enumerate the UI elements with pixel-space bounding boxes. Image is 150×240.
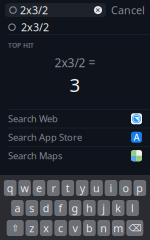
staticText: a <box>14 201 20 215</box>
staticText: o <box>122 181 128 195</box>
button[interactable]: Search App Store <box>0 128 150 146</box>
button[interactable]: t <box>61 180 74 196</box>
staticText: j <box>102 201 105 215</box>
button[interactable]: b <box>83 220 96 236</box>
button[interactable]: x <box>40 220 52 236</box>
staticText: ✕ <box>95 6 101 14</box>
staticText: Cancel <box>111 3 145 17</box>
staticText: 2x3/2 = <box>54 54 95 70</box>
staticText: g <box>71 201 78 215</box>
button[interactable]: d <box>40 200 52 216</box>
staticText: m <box>113 221 123 235</box>
button[interactable]: p <box>133 180 146 196</box>
button[interactable]: r <box>47 180 60 196</box>
staticText: A <box>133 131 139 143</box>
button[interactable]: g <box>69 200 81 216</box>
staticText: x <box>43 221 49 235</box>
staticText: TOP HIT <box>8 41 34 50</box>
staticText: Search Web <box>8 112 58 125</box>
button[interactable]: Cancel <box>111 3 145 17</box>
button[interactable]: Search Maps <box>0 147 150 165</box>
staticText: i <box>109 181 112 195</box>
staticText: n <box>100 221 107 235</box>
button[interactable]: Search Web <box>0 110 150 128</box>
staticText: s <box>29 201 34 215</box>
button[interactable]: e <box>33 180 45 196</box>
button[interactable]: m <box>112 220 124 236</box>
button[interactable]: o <box>119 180 132 196</box>
button[interactable]: f <box>54 200 67 216</box>
staticText: ⇧ <box>11 223 19 233</box>
staticText: l <box>131 201 134 215</box>
button[interactable]: 2x3/2 <box>5 3 106 17</box>
button[interactable]: l <box>126 200 139 216</box>
staticText: v <box>72 221 77 235</box>
button[interactable]: h <box>83 200 96 216</box>
staticText: 3 <box>69 72 80 97</box>
button[interactable]: w <box>18 180 31 196</box>
staticText: 2x3/2 <box>21 20 49 34</box>
staticText: u <box>93 181 100 195</box>
staticText: b <box>86 221 93 235</box>
staticText: z <box>29 221 34 235</box>
staticText: 2x3/2 <box>20 3 48 17</box>
button[interactable]: k <box>112 200 124 216</box>
button[interactable]: i <box>105 180 117 196</box>
staticText: d <box>43 201 50 215</box>
button[interactable]: q <box>4 180 16 196</box>
staticText: k <box>115 201 121 215</box>
button[interactable]: u <box>90 180 103 196</box>
staticText: Search Maps <box>8 149 62 162</box>
staticText: h <box>86 201 93 215</box>
staticText: q <box>7 181 14 195</box>
button[interactable]: Delete <box>126 220 143 236</box>
button[interactable]: y <box>76 180 88 196</box>
button[interactable]: n <box>97 220 110 236</box>
button[interactable]: z <box>25 220 38 236</box>
button[interactable]: 2x3/2 <box>0 20 150 34</box>
staticText: c <box>58 221 63 235</box>
button[interactable]: v <box>69 220 81 236</box>
staticText: r <box>51 181 55 195</box>
staticText: Search App Store <box>8 131 82 143</box>
staticText: f <box>59 201 63 215</box>
button[interactable]: c <box>54 220 67 236</box>
staticText: w <box>21 181 29 195</box>
button[interactable]: a <box>11 200 24 216</box>
staticText: p <box>136 181 143 195</box>
staticText: ◥ <box>134 116 138 122</box>
staticText: t <box>66 181 70 195</box>
staticText: y <box>80 181 85 195</box>
staticText: ⌫ <box>128 223 141 233</box>
button[interactable]: s <box>25 200 38 216</box>
button[interactable]: Shift <box>7 220 24 236</box>
button[interactable]: j <box>97 200 110 216</box>
staticText: e <box>36 181 42 195</box>
